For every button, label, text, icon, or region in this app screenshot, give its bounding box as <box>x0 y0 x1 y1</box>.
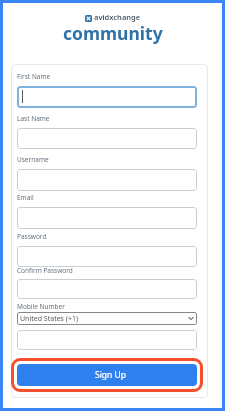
button[interactable]: United States (+1) <box>17 312 197 325</box>
button[interactable] <box>17 330 197 350</box>
staticText: Email <box>17 193 34 202</box>
staticText: Sign Up <box>95 369 126 381</box>
button[interactable] <box>17 207 197 229</box>
staticText: Mobile Number <box>17 302 65 311</box>
staticText: United States (+1) <box>20 314 79 324</box>
staticText: avidxchange <box>94 12 141 22</box>
staticText: First Name <box>17 72 51 81</box>
staticText: Confirm Password <box>17 266 73 275</box>
staticText: Password <box>17 232 47 241</box>
staticText: Last Name <box>17 114 50 123</box>
staticText: Username <box>17 155 49 164</box>
button[interactable]: Sign Up <box>17 364 197 386</box>
button[interactable] <box>17 246 197 267</box>
staticText: community <box>63 21 163 45</box>
button[interactable] <box>17 169 197 191</box>
button[interactable] <box>17 128 197 149</box>
button[interactable] <box>17 86 197 108</box>
button[interactable] <box>17 279 197 299</box>
